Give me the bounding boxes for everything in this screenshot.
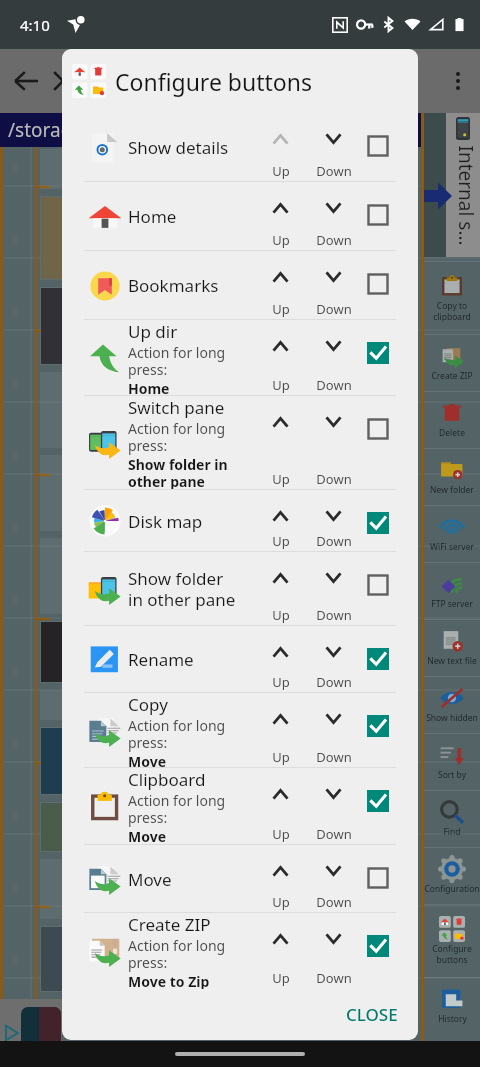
button[interactable]: Switch pane <box>62 396 396 490</box>
button[interactable]: Copy <box>62 693 396 768</box>
button[interactable]: Copy to clipboard <box>424 261 480 334</box>
button[interactable]: Up <box>254 768 307 845</box>
staticText: Move <box>128 752 167 768</box>
button[interactable]: WiFi server <box>424 505 480 562</box>
button[interactable]: Show folder in other pane <box>62 552 396 626</box>
button[interactable]: Up <box>254 490 307 552</box>
staticText: Home <box>128 205 177 228</box>
staticText: /storage/emulated/0 <box>8 117 194 143</box>
button[interactable]: Bookmarks <box>62 251 396 320</box>
button[interactable]: Up <box>254 182 307 251</box>
staticText: CLOSE <box>346 1003 398 1026</box>
button[interactable]: Delete <box>424 391 480 448</box>
button[interactable]: FTP server <box>424 562 480 619</box>
staticText: Configuration <box>424 883 480 895</box>
button[interactable]: Down <box>307 626 360 693</box>
button[interactable]: Up <box>254 251 307 320</box>
button[interactable]: History <box>424 977 480 1034</box>
button[interactable]: Up <box>254 626 307 693</box>
staticText: 4:10 <box>20 15 50 35</box>
staticText: Action for long press: <box>128 791 226 827</box>
staticText: Show details <box>128 136 229 159</box>
button[interactable]: Down <box>307 913 360 989</box>
button[interactable]: Configure buttons <box>424 904 480 977</box>
button[interactable]: Home <box>62 182 396 251</box>
staticText: Action for long press: <box>128 419 226 455</box>
staticText: Up <box>272 470 290 488</box>
staticText: Rename <box>128 648 194 671</box>
button[interactable]: Show details <box>62 113 396 182</box>
button[interactable]: Down <box>307 845 360 913</box>
staticText: Find <box>443 826 461 838</box>
staticText: Action for long press: <box>128 716 226 752</box>
staticText: Down <box>316 893 352 911</box>
button[interactable]: Down <box>307 768 360 845</box>
staticText: Down <box>316 162 352 180</box>
button[interactable]: Configuration <box>424 847 480 904</box>
button[interactable]: Find <box>424 790 480 847</box>
button[interactable]: CLOSE <box>338 997 406 1032</box>
button[interactable]: Up <box>254 320 307 396</box>
button[interactable]: Toggle <box>360 113 396 182</box>
button[interactable]: Toggle <box>360 552 396 626</box>
button[interactable]: Sort by <box>424 733 480 790</box>
staticText: Show hidden <box>426 712 478 724</box>
staticText: Down <box>316 231 352 249</box>
button[interactable]: Up dir <box>62 320 396 396</box>
staticText: Up dir <box>128 320 178 343</box>
button[interactable]: Toggle <box>360 913 396 989</box>
staticText: Up <box>272 376 290 394</box>
staticText: Delete <box>439 427 465 439</box>
button[interactable]: Toggle <box>360 626 396 693</box>
button[interactable]: Down <box>307 490 360 552</box>
staticText: Configure buttons <box>115 66 312 97</box>
staticText: Move to Zip <box>128 972 210 989</box>
button[interactable]: Down <box>307 396 360 490</box>
staticText: Bookmarks <box>128 274 219 297</box>
button[interactable]: Toggle <box>360 182 396 251</box>
staticText: FTP server <box>431 598 473 610</box>
button[interactable]: Down <box>307 693 360 768</box>
button[interactable]: Up <box>254 845 307 913</box>
staticText: Up <box>272 825 290 843</box>
staticText: Up <box>272 893 290 911</box>
button[interactable]: Up <box>254 552 307 626</box>
button[interactable]: Disk map <box>62 490 396 552</box>
staticText: Up <box>272 532 290 550</box>
staticText: History <box>438 1013 467 1025</box>
staticText: Home <box>128 379 170 396</box>
staticText: Up <box>272 606 290 624</box>
button[interactable]: Toggle <box>360 320 396 396</box>
staticText: Down <box>316 748 352 766</box>
button[interactable]: Rename <box>62 626 396 693</box>
button[interactable]: Clipboard <box>62 768 396 845</box>
button[interactable]: Down <box>307 113 360 182</box>
button[interactable]: Create ZIP <box>424 334 480 391</box>
staticText: Up <box>272 300 290 318</box>
staticText: Up <box>272 231 290 249</box>
button[interactable]: New text file <box>424 619 480 676</box>
button[interactable]: Toggle <box>360 251 396 320</box>
button[interactable]: Show hidden <box>424 676 480 733</box>
button[interactable]: Toggle <box>360 768 396 845</box>
button[interactable]: Down <box>307 320 360 396</box>
staticText: Down <box>316 532 352 550</box>
button[interactable]: Toggle <box>360 845 396 913</box>
button[interactable]: Up <box>254 113 307 182</box>
button[interactable]: Down <box>307 552 360 626</box>
button[interactable]: Down <box>307 251 360 320</box>
button[interactable]: Toggle <box>360 396 396 490</box>
staticText: Up <box>272 969 290 987</box>
button[interactable]: Toggle <box>360 693 396 768</box>
staticText: Down <box>316 825 352 843</box>
button[interactable]: New folder <box>424 448 480 505</box>
button[interactable]: Up <box>254 913 307 989</box>
button[interactable]: Toggle <box>360 490 396 552</box>
staticText: Move <box>128 868 172 891</box>
button[interactable]: Down <box>307 182 360 251</box>
button[interactable]: Move <box>62 845 396 913</box>
button[interactable]: Up <box>254 396 307 490</box>
staticText: Move <box>128 827 167 845</box>
button[interactable]: Create ZIP <box>62 913 396 989</box>
button[interactable]: Up <box>254 693 307 768</box>
